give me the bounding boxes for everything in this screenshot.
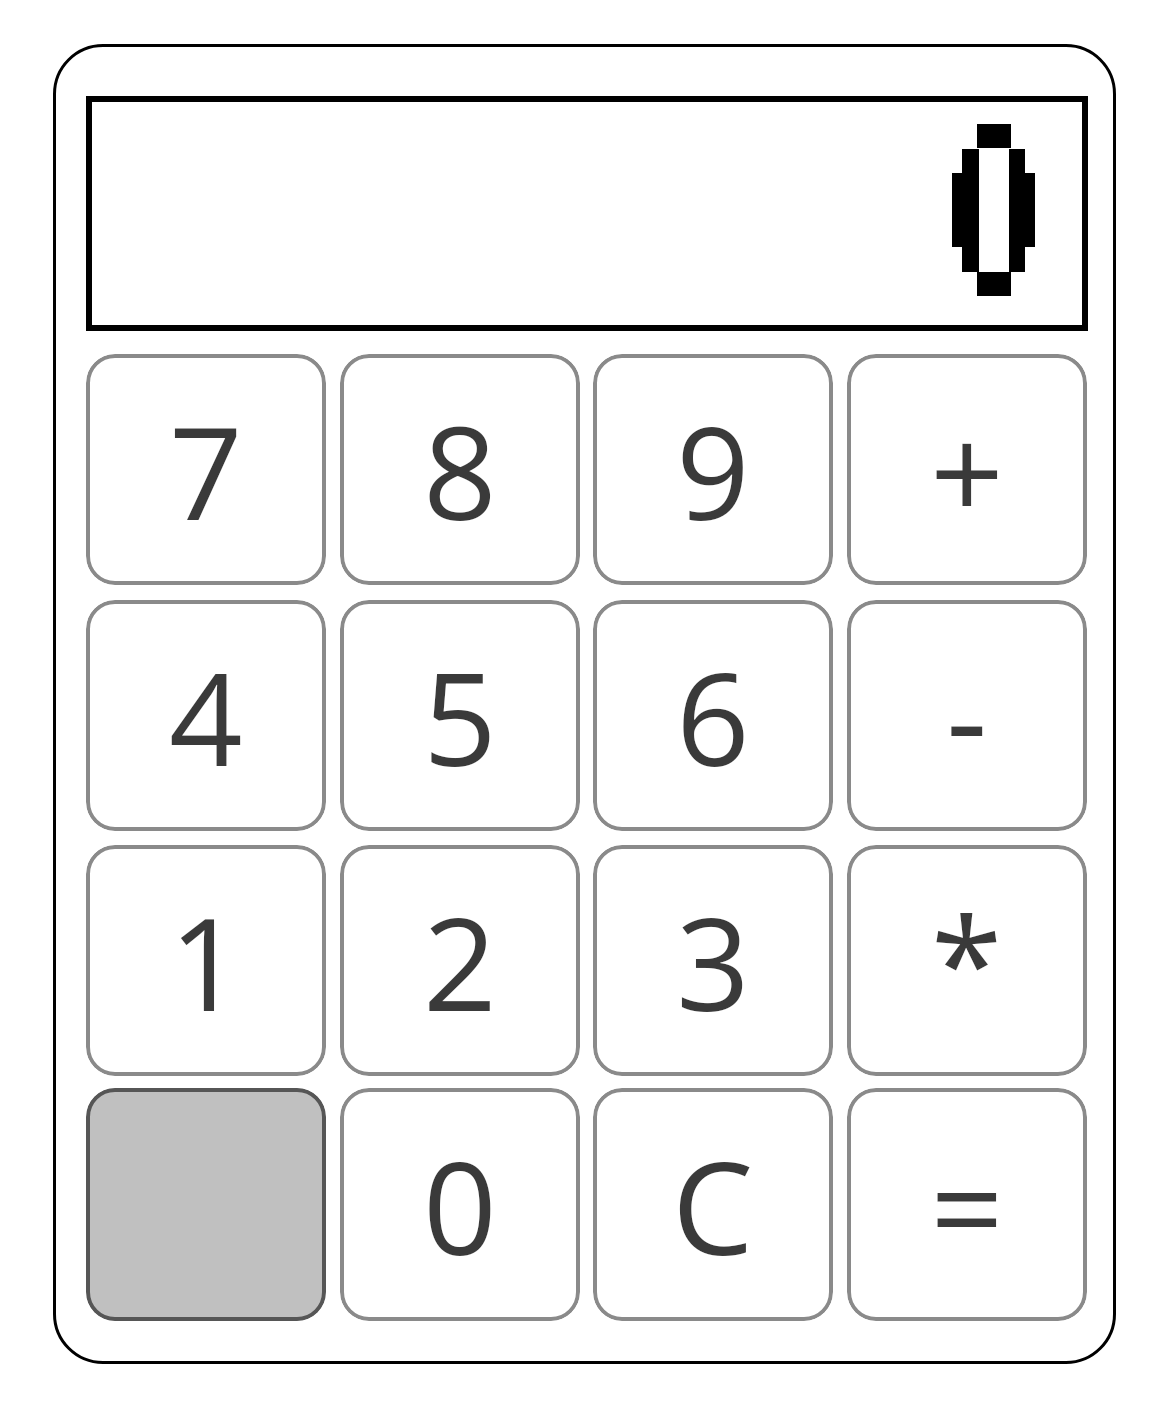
button[interactable]: 8	[340, 354, 580, 585]
staticText: 3	[676, 873, 750, 1049]
button[interactable]: -	[847, 600, 1087, 831]
button[interactable]: C	[593, 1088, 833, 1321]
staticText: 9	[676, 382, 750, 558]
button[interactable]: 9	[593, 354, 833, 585]
staticText: *	[931, 873, 1003, 1049]
staticText: 0	[423, 1117, 497, 1293]
button[interactable]: 1	[86, 845, 326, 1076]
staticText: C	[672, 1117, 754, 1293]
staticText: =	[930, 1117, 1004, 1293]
staticText: 8	[423, 382, 497, 558]
button[interactable]: 0	[340, 1088, 580, 1321]
staticText: 6	[676, 628, 750, 804]
staticText: 1	[169, 873, 243, 1049]
staticText: 2	[423, 873, 497, 1049]
button[interactable]: 3	[593, 845, 833, 1076]
staticText: 7	[169, 382, 243, 558]
button[interactable]: 2	[340, 845, 580, 1076]
staticText: -	[946, 628, 988, 804]
button[interactable]: =	[847, 1088, 1087, 1321]
button[interactable]	[86, 1088, 326, 1321]
button[interactable]: +	[847, 354, 1087, 585]
staticText: +	[930, 382, 1004, 558]
staticText: 5	[423, 628, 497, 804]
button[interactable]: 5	[340, 600, 580, 831]
staticText: 4	[169, 628, 243, 804]
button[interactable]: 7	[86, 354, 326, 585]
button[interactable]: 4	[86, 600, 326, 831]
button[interactable]: 6	[593, 600, 833, 831]
button[interactable]: *	[847, 845, 1087, 1076]
